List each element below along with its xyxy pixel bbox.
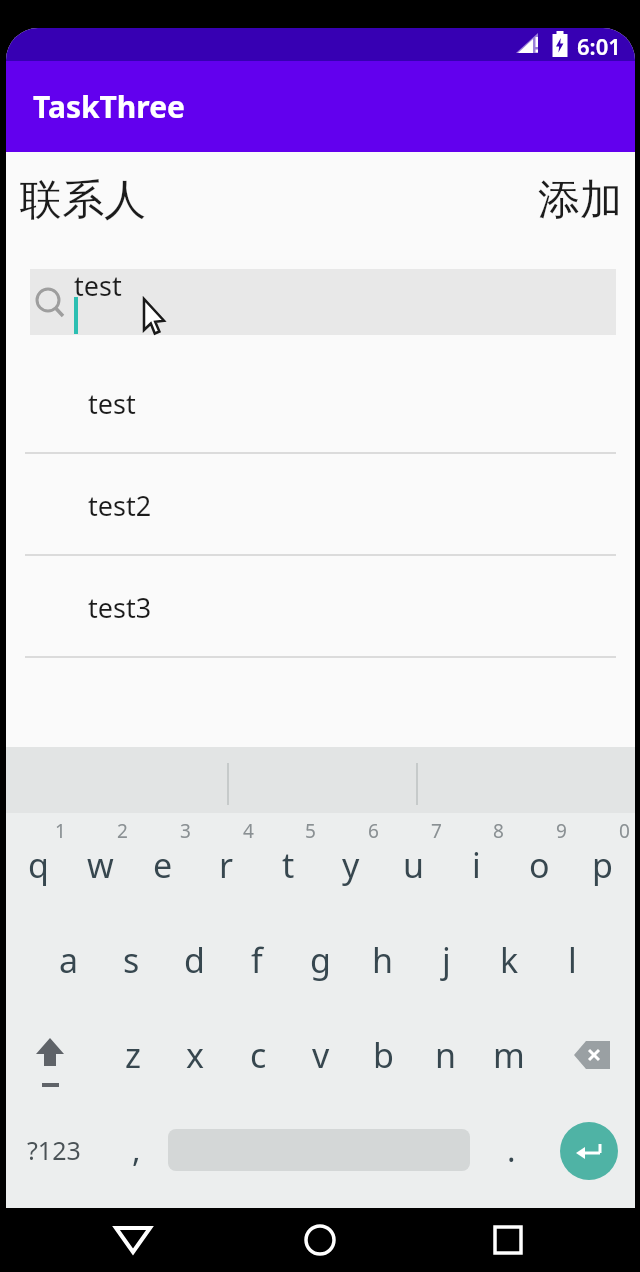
staticText: 4 xyxy=(243,818,254,842)
staticText: v xyxy=(312,1032,330,1078)
staticText: g xyxy=(310,937,331,983)
staticText: 6 xyxy=(368,818,379,842)
button[interactable] xyxy=(560,1025,620,1085)
staticText: h xyxy=(372,937,394,983)
button[interactable]: l xyxy=(540,930,604,990)
staticText: e xyxy=(153,842,173,888)
staticText: l xyxy=(568,937,577,983)
staticText: d xyxy=(184,937,205,983)
staticText: ?123 xyxy=(27,1133,81,1167)
staticText: x xyxy=(186,1032,204,1078)
button[interactable]: o xyxy=(507,835,571,895)
button[interactable] xyxy=(476,1208,540,1272)
button[interactable]: . xyxy=(486,1120,536,1180)
staticText: n xyxy=(435,1032,457,1078)
staticText: s xyxy=(123,937,140,983)
staticText: w xyxy=(87,842,114,888)
button[interactable]: test3 xyxy=(6,556,635,658)
staticText: j xyxy=(442,937,451,983)
button[interactable]: test xyxy=(30,269,616,335)
button[interactable]: test xyxy=(6,352,635,454)
staticText: 3 xyxy=(180,818,191,842)
button[interactable]: s xyxy=(99,930,163,990)
staticText: 联系人 xyxy=(20,174,146,227)
button[interactable]: q xyxy=(6,835,70,895)
staticText: f xyxy=(251,937,263,983)
staticText: u xyxy=(403,842,425,888)
button[interactable]: e xyxy=(131,835,195,895)
button[interactable]: r xyxy=(194,835,258,895)
button[interactable]: b xyxy=(351,1025,415,1085)
staticText: test3 xyxy=(88,589,152,626)
button[interactable]: , xyxy=(111,1120,161,1180)
staticText: 7 xyxy=(431,818,442,842)
button[interactable]: f xyxy=(225,930,289,990)
button[interactable]: u xyxy=(382,835,446,895)
staticText: 6:01 xyxy=(577,31,621,61)
button[interactable]: d xyxy=(162,930,226,990)
staticText: 9 xyxy=(556,818,567,842)
button[interactable] xyxy=(288,1208,352,1272)
button[interactable]: 添加 xyxy=(538,174,635,227)
staticText: test2 xyxy=(88,487,152,524)
staticText: TaskThree xyxy=(33,86,185,127)
staticText: m xyxy=(493,1032,525,1078)
staticText: a xyxy=(59,937,79,983)
staticText: 添加 xyxy=(538,174,622,227)
staticText: z xyxy=(125,1032,141,1078)
button[interactable]: i xyxy=(444,835,508,895)
button[interactable] xyxy=(20,1025,80,1097)
button[interactable]: n xyxy=(414,1025,478,1085)
staticText: c xyxy=(250,1032,267,1078)
staticText: q xyxy=(28,842,49,888)
staticText: y xyxy=(342,842,360,888)
button[interactable]: x xyxy=(163,1025,227,1085)
button[interactable]: test2 xyxy=(6,454,635,556)
staticText: i xyxy=(472,842,481,888)
staticText: . xyxy=(507,1128,516,1172)
staticText: o xyxy=(529,842,550,888)
staticText: b xyxy=(373,1032,394,1078)
button[interactable]: a xyxy=(37,930,101,990)
button[interactable]: h xyxy=(351,930,415,990)
button[interactable]: w xyxy=(68,835,132,895)
button[interactable]: m xyxy=(477,1025,541,1085)
staticText: k xyxy=(500,937,519,983)
staticText: p xyxy=(592,842,613,888)
button[interactable]: ?123 xyxy=(16,1120,92,1180)
staticText: t xyxy=(282,842,295,888)
staticText: 5 xyxy=(305,818,316,842)
button[interactable]: j xyxy=(414,930,478,990)
button[interactable]: p xyxy=(570,835,634,895)
button[interactable]: c xyxy=(226,1025,290,1085)
button[interactable]: y xyxy=(319,835,383,895)
staticText: 2 xyxy=(117,818,128,842)
button[interactable]: g xyxy=(288,930,352,990)
staticText: test xyxy=(88,385,136,422)
staticText: r xyxy=(219,842,234,888)
staticText: test xyxy=(74,267,122,304)
button[interactable] xyxy=(560,1122,618,1180)
button[interactable]: z xyxy=(101,1025,165,1085)
button[interactable]: t xyxy=(256,835,320,895)
button[interactable] xyxy=(101,1208,165,1272)
button[interactable]: k xyxy=(477,930,541,990)
button[interactable]: v xyxy=(289,1025,353,1085)
staticText: , xyxy=(132,1128,141,1172)
staticText: 8 xyxy=(493,818,504,842)
staticText: 1 xyxy=(55,818,66,842)
staticText: 0 xyxy=(619,818,630,842)
